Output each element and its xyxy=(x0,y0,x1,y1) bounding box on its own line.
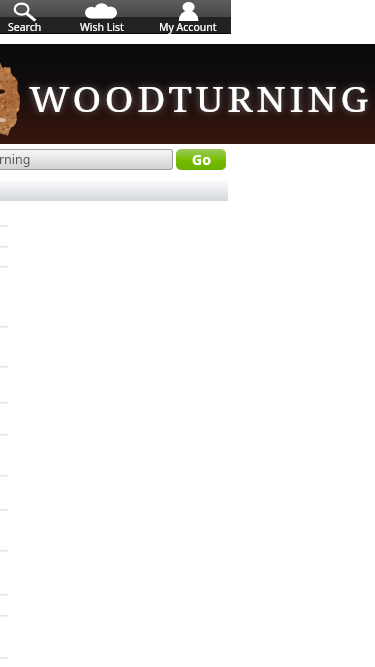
button[interactable]: Search xyxy=(0,0,64,34)
button[interactable]: My Account xyxy=(140,0,231,34)
staticText: WOODTURNING xyxy=(29,76,372,122)
button[interactable]: Wish List xyxy=(64,0,140,34)
staticText: Search xyxy=(8,20,42,34)
button[interactable]: Go xyxy=(176,149,226,170)
staticText: My Account xyxy=(159,20,217,34)
staticText: Wish List xyxy=(80,20,124,34)
button[interactable]: woodturning xyxy=(0,150,172,169)
staticText: Go xyxy=(192,150,211,169)
staticText: woodturning xyxy=(0,151,31,168)
staticText: WOODTURNING xyxy=(29,76,372,122)
staticText: WOODTURNING xyxy=(29,76,372,122)
